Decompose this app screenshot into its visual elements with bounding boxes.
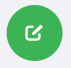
button[interactable]: Compose bbox=[7, 6, 63, 62]
